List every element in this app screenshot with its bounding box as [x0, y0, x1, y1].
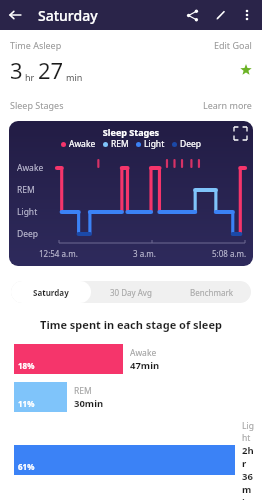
- staticText: 30min: [74, 397, 104, 410]
- staticText: 11%: [18, 398, 35, 409]
- staticText: 47min: [130, 359, 160, 372]
- staticText: 18%: [18, 360, 35, 371]
- staticText: Saturday: [33, 287, 69, 298]
- staticText: Time spent in each stage of sleep: [0, 317, 262, 332]
- staticText: 2hr 36min: [242, 444, 254, 500]
- button[interactable]: Back: [0, 0, 30, 30]
- staticText: Edit Goal: [214, 39, 252, 51]
- staticText: Sleep Stages: [10, 99, 64, 111]
- staticText: 30 Day Avg: [110, 287, 152, 298]
- button[interactable]: Learn more: [203, 99, 252, 111]
- staticText: Learn more: [203, 99, 252, 111]
- staticText: Deep: [17, 228, 39, 240]
- staticText: Awake: [69, 138, 96, 150]
- staticText: REM: [17, 184, 35, 196]
- button[interactable]: 18%: [14, 344, 254, 374]
- staticText: 5:08 a.m.: [212, 248, 247, 259]
- button[interactable]: 30 Day Avg: [91, 281, 171, 303]
- staticText: hr: [25, 71, 35, 83]
- button[interactable]: 11%: [14, 382, 254, 412]
- staticText: 27: [38, 55, 64, 85]
- button[interactable]: Edit Goal: [214, 39, 252, 51]
- staticText: Time Asleep: [10, 39, 62, 51]
- staticText: REM: [111, 138, 129, 150]
- staticText: Light: [144, 138, 165, 150]
- staticText: Deep: [180, 138, 202, 150]
- staticText: Saturday: [38, 6, 98, 25]
- staticText: Awake: [17, 162, 44, 174]
- staticText: 12:54 a.m.: [39, 248, 78, 259]
- button[interactable]: Share: [178, 1, 206, 29]
- button[interactable]: 61%: [14, 420, 254, 500]
- staticText: Light: [242, 420, 254, 444]
- staticText: min: [66, 71, 83, 83]
- staticText: REM: [74, 385, 92, 397]
- button[interactable]: Benchmark: [171, 281, 251, 303]
- button[interactable]: Expand chart: [234, 127, 247, 140]
- staticText: 61%: [18, 461, 35, 472]
- staticText: Sleep Stages: [9, 126, 253, 138]
- button[interactable]: Edit: [206, 1, 234, 29]
- staticText: 3 a.m.: [133, 248, 156, 259]
- staticText: Benchmark: [190, 287, 233, 298]
- button[interactable]: Saturday: [11, 281, 91, 303]
- staticText: Awake: [130, 347, 157, 359]
- staticText: Light: [17, 206, 38, 218]
- button[interactable]: More options: [234, 2, 260, 28]
- staticText: 3: [10, 55, 23, 85]
